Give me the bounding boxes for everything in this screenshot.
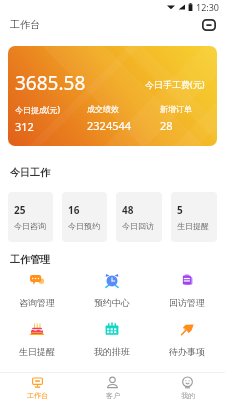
staticText: 3685.58 [15,70,86,96]
staticText: 2324544 [87,118,132,133]
staticText: 今日回访 [122,221,154,231]
button[interactable]: 咨询管理 [0,272,74,308]
button[interactable]: Messages [200,16,217,33]
staticText: 我的 [181,391,195,400]
button[interactable]: 待办事项 [149,321,224,357]
button[interactable]: 16 [62,192,107,242]
staticText: 回访管理 [169,297,205,308]
staticText: 今日提成(元) [15,104,60,115]
staticText: 成交绩效 [87,104,119,114]
button[interactable]: 25 [8,192,53,242]
staticText: 25 [14,203,26,217]
staticText: 今日工作 [10,166,50,179]
staticText: 312 [15,119,34,134]
staticText: 12:30 [196,1,220,13]
button[interactable]: 回访管理 [149,272,224,308]
staticText: 今日预约 [68,221,100,231]
staticText: 生日提醒 [177,221,209,231]
button[interactable]: 客户 [75,373,150,400]
staticText: 5 [177,203,183,217]
staticText: 今日咨询 [14,221,46,231]
staticText: 16 [68,203,80,217]
staticText: 生日提醒 [19,346,55,357]
button[interactable]: 我的 [150,373,225,400]
button[interactable]: 工作台 [0,373,75,400]
button[interactable]: 生日提醒 [0,321,74,357]
staticText: 咨询管理 [19,297,55,308]
staticText: 今日手工费(元) [145,78,205,90]
button[interactable]: 5 [171,192,217,242]
staticText: 预约中心 [94,297,130,308]
staticText: 工作台 [27,391,48,400]
staticText: 48 [122,203,134,217]
staticText: 新增订单 [160,104,192,114]
button[interactable]: 48 [116,192,162,242]
staticText: 工作管理 [10,253,50,266]
staticText: 工作台 [10,18,40,31]
button[interactable]: 我的排班 [74,321,149,357]
staticText: 客户 [106,391,120,400]
staticText: 待办事项 [169,346,205,357]
staticText: 28 [160,118,173,133]
staticText: 我的排班 [94,346,130,357]
button[interactable]: 预约中心 [74,272,149,308]
